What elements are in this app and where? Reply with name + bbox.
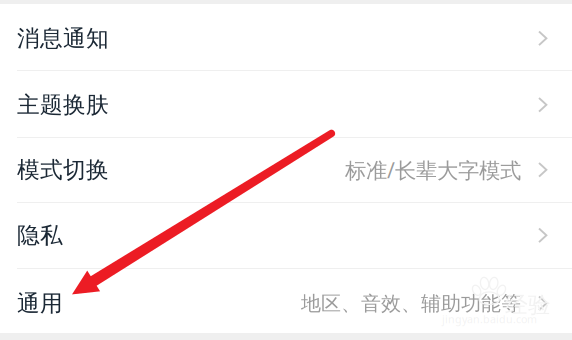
staticText: 标准/长辈大字模式: [345, 156, 521, 184]
staticText: 通用: [17, 290, 63, 317]
button[interactable]: 主题换肤: [0, 71, 572, 137]
staticText: 经验: [505, 291, 551, 319]
button[interactable]: 模式切换: [0, 138, 572, 202]
staticText: jingyan.baidu.com: [442, 312, 537, 326]
staticText: 消息通知: [17, 25, 109, 52]
button[interactable]: 通用: [0, 269, 572, 333]
button[interactable]: 隐私: [0, 203, 572, 268]
staticText: 隐私: [17, 222, 63, 249]
staticText: 模式切换: [17, 156, 109, 184]
staticText: 地区、音效、辅助功能等: [301, 291, 521, 316]
button[interactable]: 消息通知: [0, 4, 572, 70]
staticText: 主题换肤: [17, 91, 109, 119]
